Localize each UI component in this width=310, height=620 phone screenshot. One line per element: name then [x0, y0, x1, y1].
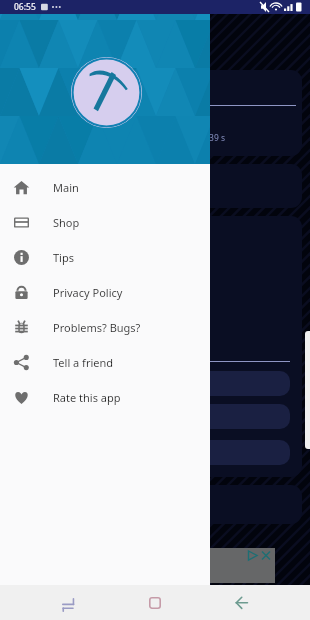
- button[interactable]: UPGRADE BEST: [17, 404, 290, 429]
- button[interactable]: Problems? Bugs?: [0, 310, 210, 345]
- button[interactable]: Rate this app: [0, 380, 210, 415]
- button[interactable]: Home: [133, 585, 177, 620]
- button[interactable]: Recent apps: [46, 585, 90, 620]
- staticText: Tell a friend: [53, 355, 114, 370]
- staticText: Privacy Policy: [53, 285, 123, 300]
- staticText: 06:55: [14, 1, 36, 13]
- button[interactable]: [17, 440, 290, 465]
- staticText: Main: [53, 180, 79, 195]
- button[interactable]: Back: [219, 585, 263, 620]
- button[interactable]: Tell a friend: [0, 345, 210, 380]
- staticText: Tips: [53, 250, 74, 265]
- staticText: Shop: [53, 215, 80, 230]
- staticText: Remaining: 2 h 19 m 39 s: [125, 132, 226, 144]
- button[interactable]: COLLECT FREE COINS: [17, 371, 290, 396]
- button[interactable]: Tips: [0, 240, 210, 275]
- staticText: Rate this app: [53, 390, 121, 405]
- button[interactable]: Privacy Policy: [0, 275, 210, 310]
- staticText: Problems? Bugs?: [53, 320, 141, 335]
- button[interactable]: Shop: [0, 205, 210, 240]
- button[interactable]: Main: [0, 170, 210, 205]
